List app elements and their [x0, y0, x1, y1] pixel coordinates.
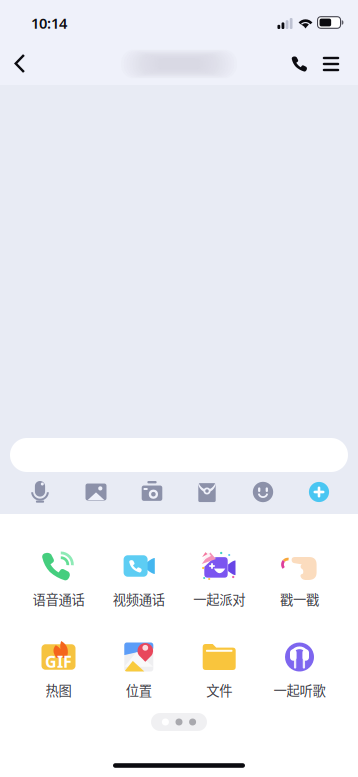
button[interactable]: 戳一戳	[259, 549, 339, 619]
staticText: 视频通话	[113, 589, 165, 609]
staticText: 戳一戳	[280, 589, 319, 609]
button[interactable]: GIF	[18, 640, 98, 710]
staticText: 10:14	[31, 13, 67, 33]
button[interactable]: Call	[279, 45, 320, 83]
button[interactable]: Photos	[71, 477, 121, 507]
button[interactable]: Red packet	[182, 477, 232, 507]
button[interactable]: Back	[0, 44, 39, 84]
button[interactable]: 视频通话	[99, 549, 179, 619]
staticText: 一起听歌	[273, 680, 325, 700]
button[interactable]: Voice message	[15, 477, 65, 507]
staticText: 语音通话	[32, 589, 84, 609]
button[interactable]: More	[294, 477, 344, 507]
staticText: 一起派对	[193, 589, 245, 609]
staticText: 位置	[126, 680, 152, 700]
button[interactable]: Menu	[311, 46, 351, 82]
button[interactable]: 一起派对	[179, 549, 259, 619]
staticText: 文件	[206, 680, 232, 700]
button[interactable]: 文件	[179, 640, 259, 710]
button[interactable]: 语音通话	[18, 549, 98, 619]
button[interactable]: 位置	[99, 640, 179, 710]
button[interactable]: Camera	[127, 477, 177, 507]
staticText: GIF	[45, 651, 72, 672]
staticText: 热图	[45, 680, 71, 700]
button[interactable]: Stickers	[238, 477, 288, 507]
button[interactable]: 一起听歌	[259, 640, 339, 710]
